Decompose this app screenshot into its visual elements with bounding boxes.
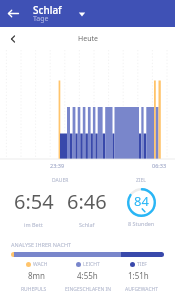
staticText: 4:55h (77, 270, 98, 281)
button[interactable]: 84 (114, 188, 168, 227)
staticText: RUHEPULS (21, 286, 47, 293)
button[interactable]: 6:46 (60, 188, 114, 228)
staticText: 6:54 (14, 188, 54, 215)
staticText: Schlaf (33, 3, 62, 17)
staticText: TIEF (137, 261, 147, 268)
button[interactable]: EINGESCHLAFEN IN (61, 286, 115, 293)
button[interactable]: TIEF (113, 261, 164, 281)
button[interactable]: AUFGEWACHT (115, 286, 169, 293)
staticText: ANALYSE IHRER NACHT (11, 241, 72, 248)
button[interactable]: 6:54 (7, 188, 60, 228)
button[interactable]: WACH (11, 261, 62, 281)
staticText: im Bett (24, 221, 43, 228)
staticText: 84 (134, 192, 149, 210)
staticText: 23:39 (50, 162, 65, 169)
button[interactable]: Previous day (6, 32, 20, 46)
staticText: 8 Stunden (128, 220, 155, 227)
staticText: ZIEL (136, 177, 146, 184)
button[interactable]: Back (5, 5, 22, 22)
staticText: 06:33 (152, 162, 167, 169)
staticText: Tage (33, 14, 49, 24)
staticText: AUFGEWACHT (125, 286, 159, 293)
staticText: 6:46 (67, 188, 107, 215)
staticText: DAUER (52, 177, 69, 184)
button[interactable]: Change period (75, 7, 89, 21)
staticText: 1:51h (128, 270, 149, 281)
staticText: Heute (78, 34, 98, 44)
staticText: LEICHT (83, 261, 100, 268)
button[interactable]: LEICHT (62, 261, 113, 281)
staticText: Schlaf (79, 221, 95, 228)
button[interactable]: RUHEPULS (6, 286, 61, 293)
staticText: EINGESCHLAFEN IN (65, 286, 112, 293)
staticText: 8mn (28, 270, 45, 281)
staticText: WACH (33, 261, 48, 268)
